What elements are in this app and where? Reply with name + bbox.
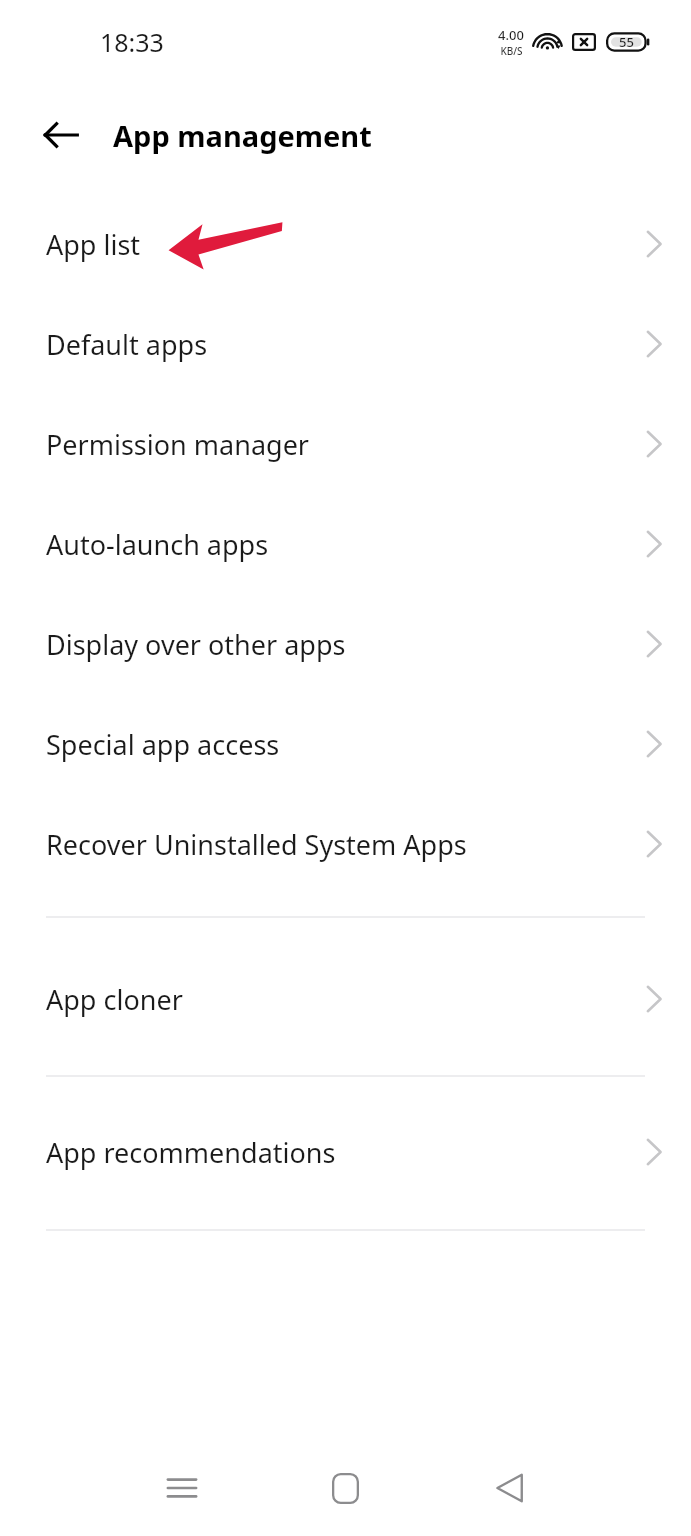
button[interactable]: Back <box>468 1453 552 1523</box>
button[interactable]: Auto-launch apps <box>0 494 691 594</box>
button[interactable]: Recover Uninstalled System Apps <box>0 794 691 894</box>
button[interactable]: Recent apps <box>140 1453 224 1523</box>
button[interactable]: Default apps <box>0 294 691 394</box>
staticText: Recover Uninstalled System Apps <box>46 826 467 863</box>
button[interactable]: Special app access <box>0 694 691 794</box>
staticText: KB/S <box>500 44 523 58</box>
staticText: App cloner <box>46 981 183 1018</box>
button[interactable]: App recommendations <box>0 1102 691 1202</box>
staticText: Special app access <box>46 726 280 763</box>
staticText: Permission manager <box>46 426 310 463</box>
staticText: App recommendations <box>46 1134 336 1171</box>
staticText: 18:33 <box>100 25 164 59</box>
staticText: App list <box>46 226 141 263</box>
button[interactable]: Home <box>303 1453 387 1523</box>
button[interactable]: Back <box>30 104 92 166</box>
staticText: Default apps <box>46 326 208 363</box>
button[interactable]: App list <box>0 194 691 294</box>
button[interactable]: App cloner <box>0 949 691 1049</box>
staticText: App management <box>113 116 372 155</box>
staticText: 4.00 <box>498 26 524 44</box>
button[interactable]: Display over other apps <box>0 594 691 694</box>
button[interactable]: Permission manager <box>0 394 691 494</box>
staticText: 55 <box>619 33 634 51</box>
staticText: Auto-launch apps <box>46 526 269 563</box>
staticText: Display over other apps <box>46 626 346 663</box>
